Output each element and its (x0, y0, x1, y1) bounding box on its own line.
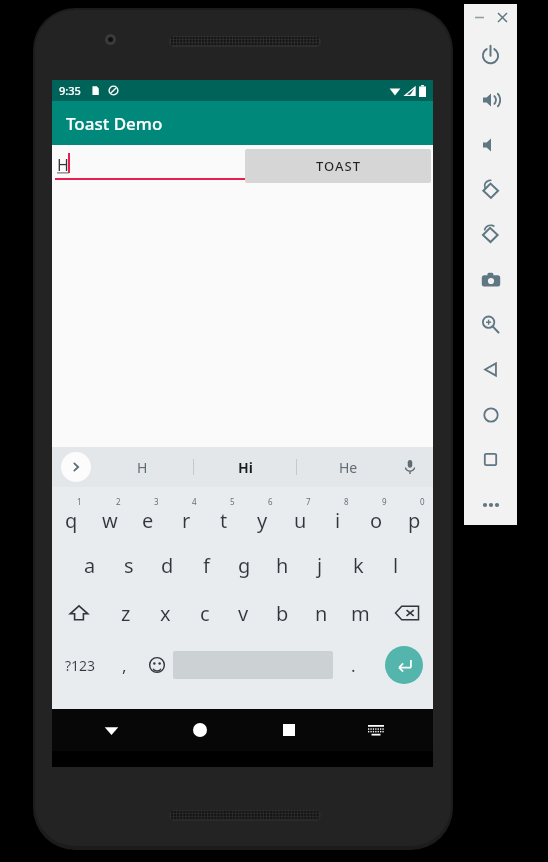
staticText: v (238, 600, 249, 627)
button[interactable]: . (333, 637, 374, 693)
button[interactable]: More (464, 482, 517, 527)
button[interactable]: 5 (205, 493, 243, 541)
staticText: p (408, 507, 421, 534)
button[interactable]: x (146, 589, 185, 637)
button[interactable]: Volume down (464, 122, 517, 167)
staticText: k (353, 552, 364, 579)
staticText: 0 (420, 496, 425, 507)
staticText: 4 (192, 496, 197, 507)
button[interactable]: Expand suggestions (61, 452, 91, 482)
button[interactable]: Enter (385, 646, 423, 684)
staticText: 3 (154, 496, 159, 507)
button[interactable]: 7 (281, 493, 319, 541)
staticText: c (200, 600, 210, 627)
button[interactable]: Zoom (464, 302, 517, 347)
button[interactable]: Volume up (464, 77, 517, 122)
button[interactable]: TOAST (245, 149, 431, 183)
button[interactable]: j (301, 541, 339, 589)
button[interactable]: H (55, 148, 245, 186)
button[interactable]: v (224, 589, 263, 637)
button[interactable]: Toast Demo (52, 101, 433, 145)
staticText: u (294, 507, 307, 534)
button[interactable]: Back (94, 713, 128, 747)
staticText: t (220, 507, 228, 534)
button[interactable]: s (109, 541, 148, 589)
button[interactable]: Backspace (380, 589, 433, 637)
button[interactable]: Close (493, 8, 511, 26)
button[interactable]: , (108, 637, 140, 693)
button[interactable]: Recents (272, 713, 306, 747)
button[interactable]: H (91, 447, 193, 487)
button[interactable]: Rotate left (464, 167, 517, 212)
button[interactable]: Hi (194, 447, 296, 487)
button[interactable]: Minimize (470, 8, 488, 26)
staticText: l (393, 552, 399, 579)
button[interactable]: Power (464, 32, 517, 77)
button[interactable]: k (339, 541, 377, 589)
button[interactable]: m (341, 589, 380, 637)
staticText: 5 (230, 496, 235, 507)
staticText: n (315, 600, 328, 627)
button[interactable]: h (263, 541, 301, 589)
button[interactable]: 9 (357, 493, 395, 541)
button[interactable]: Emoji (140, 637, 173, 693)
button[interactable]: b (263, 589, 302, 637)
staticText: 9:35 (59, 83, 81, 98)
button[interactable]: 2 (91, 493, 129, 541)
button[interactable]: Voice input (399, 456, 421, 478)
staticText: He (339, 458, 358, 477)
staticText: m (351, 600, 370, 627)
button[interactable]: g (225, 541, 263, 589)
button[interactable]: l (377, 541, 415, 589)
staticText: Toast Demo (66, 112, 163, 135)
button[interactable]: 0 (395, 493, 433, 541)
staticText: j (317, 552, 323, 579)
button[interactable]: Overview (464, 437, 517, 482)
staticText: r (182, 507, 191, 534)
staticText: . (351, 654, 356, 677)
staticText: f (203, 552, 210, 579)
button[interactable]: d (148, 541, 187, 589)
button[interactable]: 1 (52, 493, 91, 541)
staticText: e (142, 507, 154, 534)
button[interactable]: He (297, 447, 399, 487)
staticText: q (65, 507, 78, 534)
button[interactable]: z (106, 589, 146, 637)
staticText: Hi (238, 458, 253, 477)
button[interactable]: Rotate right (464, 212, 517, 257)
staticText: 8 (344, 496, 349, 507)
button[interactable]: Back (464, 347, 517, 392)
staticText: x (160, 600, 171, 627)
staticText: g (238, 552, 251, 579)
button[interactable]: n (302, 589, 341, 637)
staticText: d (161, 552, 174, 579)
staticText: 7 (306, 496, 311, 507)
staticText: 9 (382, 496, 387, 507)
staticText: y (257, 507, 268, 534)
button[interactable]: 3 (129, 493, 167, 541)
staticText: 1 (77, 496, 82, 507)
button[interactable]: Home (464, 392, 517, 437)
staticText: o (370, 507, 383, 534)
button[interactable]: f (187, 541, 225, 589)
staticText: 2 (116, 496, 121, 507)
button[interactable]: Keyboard switcher (361, 715, 391, 745)
staticText: s (124, 552, 134, 579)
staticText: a (84, 552, 96, 579)
staticText: H (137, 458, 148, 477)
button[interactable]: 8 (319, 493, 357, 541)
button[interactable]: ?123 (52, 637, 108, 693)
staticText: TOAST (316, 157, 361, 175)
button[interactable]: 4 (167, 493, 205, 541)
button[interactable]: Home (183, 713, 217, 747)
button[interactable]: a (70, 541, 109, 589)
staticText: h (276, 552, 289, 579)
staticText: ?123 (65, 656, 96, 675)
staticText: , (122, 654, 127, 677)
button[interactable]: Shift (52, 589, 106, 637)
staticText: i (335, 507, 341, 534)
button[interactable]: Screenshot (464, 257, 517, 302)
button[interactable]: 6 (243, 493, 281, 541)
button[interactable]: c (185, 589, 224, 637)
